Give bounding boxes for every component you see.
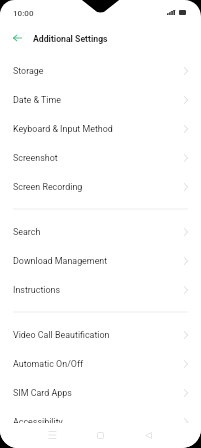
staticText: Additional Settings — [33, 34, 108, 44]
staticText: Screenshot — [13, 153, 58, 163]
staticText: SIM Card Apps — [13, 388, 72, 398]
button[interactable]: Screenshot — [0, 143, 201, 172]
button[interactable]: Back — [7, 30, 27, 46]
button[interactable]: Video Call Beautification — [0, 320, 201, 349]
staticText: Date & Time — [13, 95, 62, 105]
staticText: Accessibility — [13, 417, 63, 427]
button[interactable]: Accessibility — [0, 407, 201, 436]
button[interactable]: Recent apps — [32, 426, 72, 444]
staticText: 10:00 — [13, 8, 34, 17]
staticText: Keyboard & Input Method — [13, 124, 113, 134]
staticText: Download Management — [13, 256, 108, 266]
button[interactable]: Keyboard & Input Method — [0, 114, 201, 143]
staticText: Instructions — [13, 285, 61, 295]
button[interactable]: Download Management — [0, 246, 201, 275]
staticText: Screen Recording — [13, 182, 83, 192]
staticText: Storage — [13, 66, 44, 76]
button[interactable]: Home — [80, 426, 120, 444]
button[interactable]: Storage — [0, 56, 201, 85]
button[interactable]: Instructions — [0, 275, 201, 304]
staticText: Search — [13, 227, 41, 237]
button[interactable]: Search — [0, 217, 201, 246]
button[interactable]: SIM Card Apps — [0, 378, 201, 407]
staticText: Automatic On/Off — [13, 359, 84, 369]
button[interactable]: Back — [128, 426, 168, 444]
button[interactable]: Automatic On/Off — [0, 349, 201, 378]
button[interactable]: Screen Recording — [0, 172, 201, 201]
staticText: Video Call Beautification — [13, 330, 110, 340]
button[interactable]: Date & Time — [0, 85, 201, 114]
